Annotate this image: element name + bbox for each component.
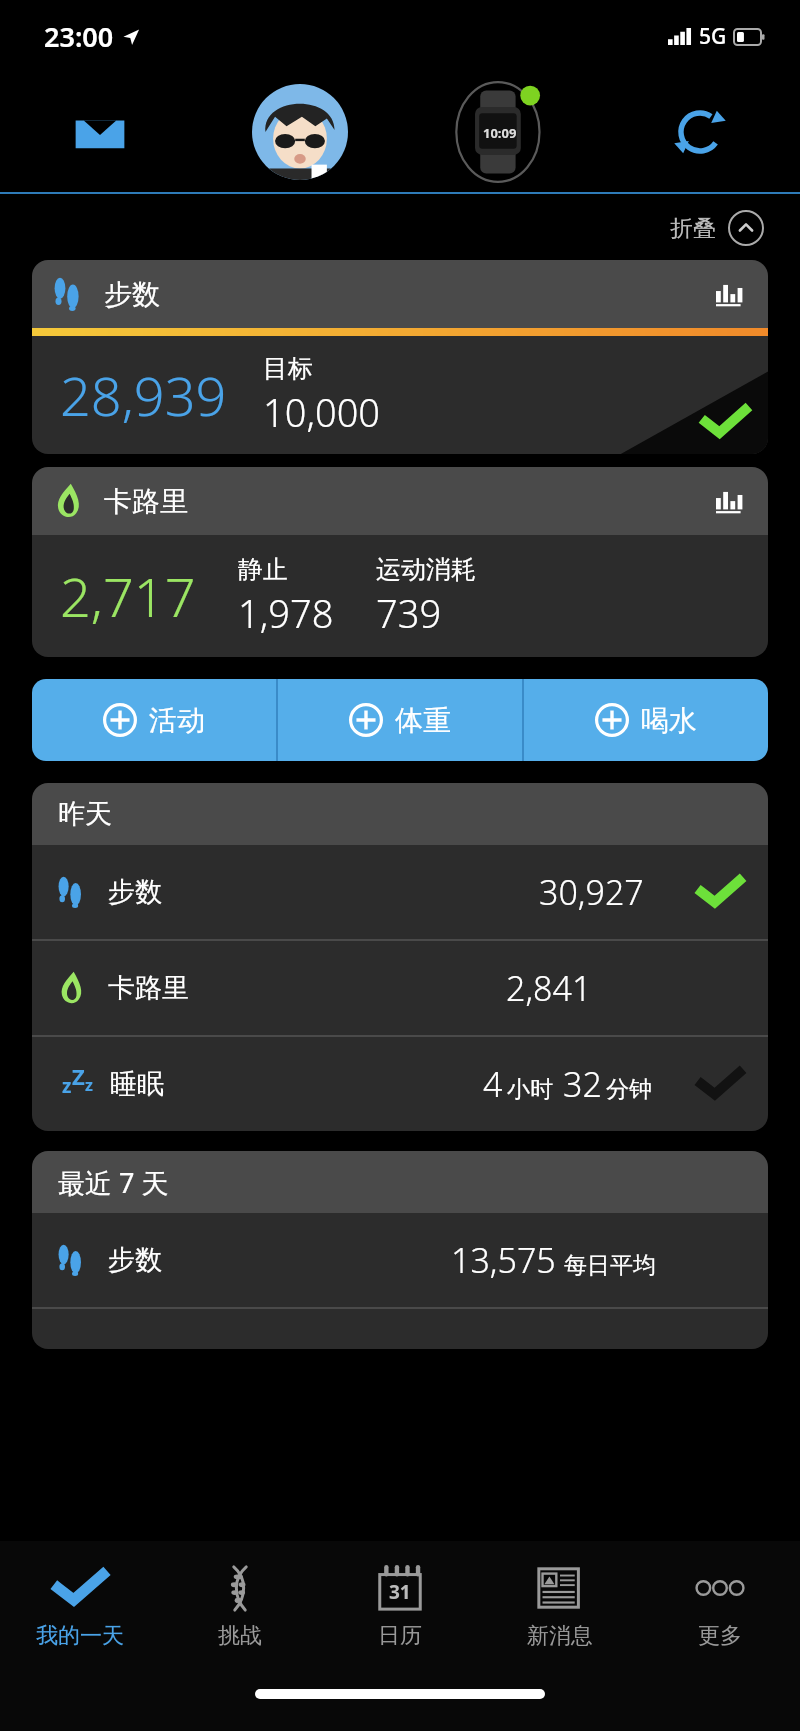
staticText: 新消息: [527, 1622, 593, 1650]
staticText: 23:00: [44, 18, 114, 55]
staticText: 31: [389, 1579, 411, 1605]
staticText: 挑战: [218, 1622, 262, 1650]
button[interactable]: 卡路里: [32, 941, 768, 1035]
button[interactable]: 我的一天: [0, 1541, 160, 1671]
staticText: 4: [483, 1061, 503, 1107]
staticText: 运动消耗: [376, 554, 476, 585]
staticText: 活动: [149, 703, 205, 738]
staticText: 睡眠: [110, 1067, 164, 1101]
staticText: 我的一天: [36, 1622, 124, 1650]
staticText: 10,000: [263, 386, 381, 438]
staticText: 5G: [699, 22, 727, 51]
button[interactable]: 新消息: [480, 1541, 640, 1671]
staticText: 体重: [395, 703, 451, 738]
staticText: 32: [563, 1061, 602, 1107]
staticText: z: [85, 1074, 93, 1096]
staticText: 小时: [507, 1075, 553, 1104]
staticText: 分钟: [606, 1075, 652, 1104]
staticText: 步数: [108, 875, 162, 909]
staticText: 日历: [378, 1622, 422, 1650]
button[interactable]: 步数: [32, 260, 768, 454]
staticText: 静止: [238, 554, 288, 585]
staticText: 2,717: [60, 559, 196, 633]
staticText: 步数: [104, 277, 160, 312]
staticText: 28,939: [60, 358, 227, 432]
staticText: 步数: [108, 1243, 162, 1277]
button[interactable]: Inbox: [0, 72, 200, 192]
staticText: 13,575: [451, 1237, 556, 1283]
button[interactable]: Sync: [600, 72, 800, 192]
staticText: z: [62, 1073, 72, 1099]
button[interactable]: Watch: [400, 72, 600, 192]
staticText: 喝水: [641, 703, 697, 738]
staticText: Z: [72, 1061, 85, 1091]
staticText: 2,841: [506, 965, 592, 1011]
staticText: 折叠: [670, 214, 716, 243]
staticText: 739: [376, 587, 442, 639]
staticText: 更多: [698, 1622, 742, 1650]
button[interactable]: 折叠: [664, 204, 770, 252]
button[interactable]: 步数: [32, 1213, 768, 1307]
button[interactable]: 31: [320, 1541, 480, 1671]
staticText: 10:09: [483, 124, 517, 142]
button[interactable]: 卡路里: [32, 467, 768, 657]
button[interactable]: 体重: [278, 679, 522, 761]
button[interactable]: 喝水: [524, 679, 768, 761]
button[interactable]: 更多: [640, 1541, 800, 1671]
button[interactable]: 活动: [32, 679, 276, 761]
button[interactable]: 挑战: [160, 1541, 320, 1671]
staticText: 卡路里: [108, 971, 189, 1005]
staticText: 每日平均: [564, 1251, 656, 1280]
staticText: 目标: [263, 353, 313, 384]
staticText: 卡路里: [104, 484, 188, 519]
button[interactable]: 步数: [32, 845, 768, 939]
staticText: 最近 7 天: [58, 1164, 169, 1201]
button[interactable]: Profile: [200, 72, 400, 192]
staticText: 昨天: [58, 797, 112, 831]
button[interactable]: z: [32, 1037, 768, 1131]
staticText: 1,978: [238, 587, 334, 639]
staticText: 30,927: [539, 869, 644, 915]
